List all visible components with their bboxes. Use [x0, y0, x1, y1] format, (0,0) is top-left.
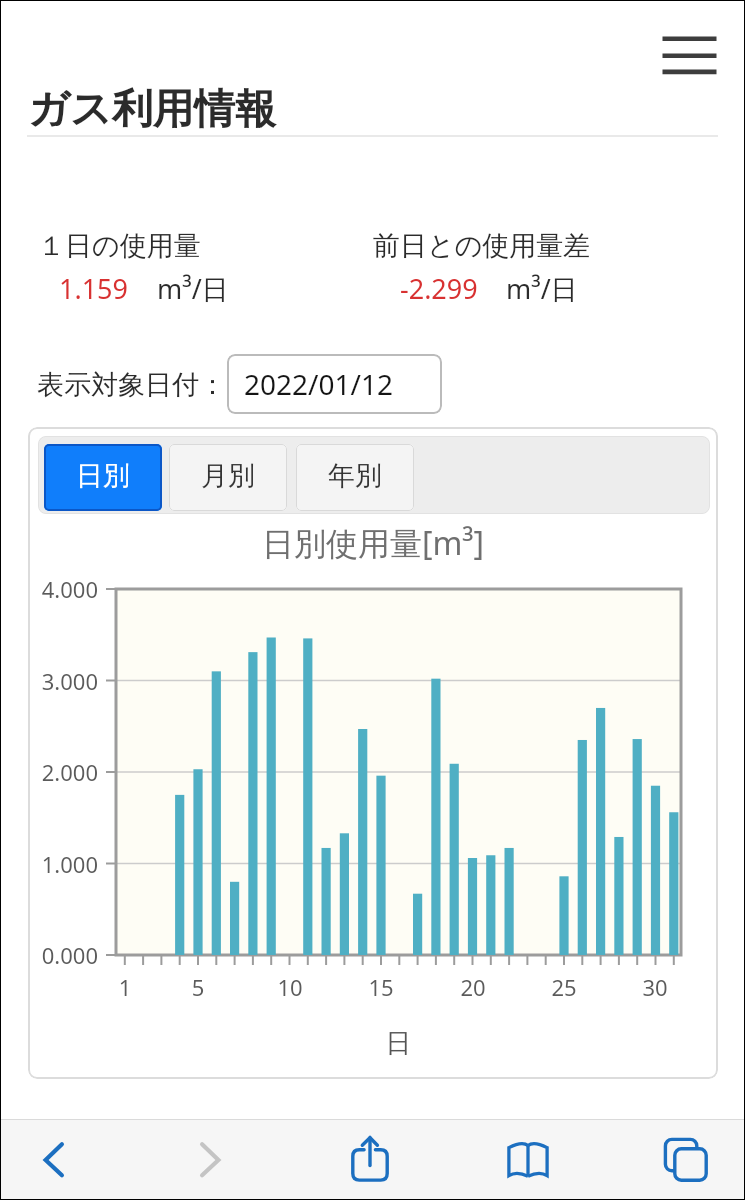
- button[interactable]: 日別: [44, 444, 162, 511]
- staticText: 3.000: [0, 666, 98, 696]
- staticText: 前日との使用量差: [373, 229, 591, 263]
- staticText: 4.000: [0, 574, 98, 604]
- button[interactable]: Back: [18, 1124, 90, 1196]
- staticText: 2.000: [0, 757, 98, 787]
- staticText: 30: [615, 972, 695, 1002]
- staticText: -2.299: [400, 270, 478, 307]
- staticText: 2022/01/12: [244, 365, 393, 403]
- staticText: m³/日: [157, 270, 229, 307]
- staticText: 表示対象日付：: [37, 368, 226, 402]
- staticText: 日別使用量[m³]: [28, 521, 718, 565]
- button[interactable]: Share: [334, 1124, 406, 1196]
- staticText: 15: [341, 972, 421, 1002]
- staticText: m³/日: [506, 270, 578, 307]
- staticText: 20: [433, 972, 513, 1002]
- staticText: 25: [524, 972, 604, 1002]
- button[interactable]: Tabs: [650, 1124, 722, 1196]
- staticText: 月別: [201, 459, 255, 493]
- button[interactable]: Bookmarks: [492, 1124, 564, 1196]
- staticText: 5: [158, 972, 238, 1002]
- staticText: 1.159: [59, 270, 129, 307]
- button[interactable]: 月別: [169, 444, 287, 511]
- staticText: ガス利用情報: [28, 84, 276, 136]
- staticText: 日: [116, 1027, 681, 1060]
- staticText: 日別: [76, 459, 130, 493]
- staticText: １日の使用量: [38, 229, 201, 263]
- button[interactable]: 年別: [296, 444, 414, 511]
- staticText: 年別: [328, 459, 382, 493]
- staticText: 0.000: [0, 940, 98, 970]
- staticText: 1: [85, 972, 165, 1002]
- button[interactable]: Forward: [174, 1124, 246, 1196]
- staticText: 10: [250, 972, 330, 1002]
- button[interactable]: Menu: [657, 24, 719, 86]
- staticText: 1.000: [0, 849, 98, 879]
- button[interactable]: 2022/01/12: [227, 354, 442, 414]
